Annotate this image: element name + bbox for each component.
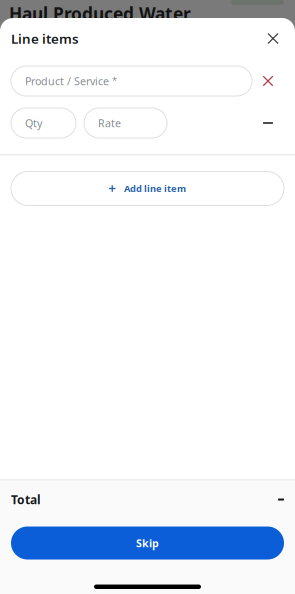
staticText: Line items <box>11 30 79 47</box>
staticText: * <box>112 74 117 86</box>
button[interactable]: Add line item <box>11 171 284 205</box>
staticText: Haul Produced Water <box>9 2 191 25</box>
button[interactable]: Close <box>257 22 289 54</box>
staticText: Skip <box>136 536 159 550</box>
staticText: Total <box>11 491 41 507</box>
button[interactable]: Remove line item <box>258 68 278 94</box>
staticText: Product / Service <box>25 74 109 88</box>
staticText: Add line item <box>124 182 186 195</box>
button[interactable]: Skip <box>11 526 284 559</box>
staticText: Rate <box>98 116 121 130</box>
staticText: Qty <box>25 116 42 130</box>
